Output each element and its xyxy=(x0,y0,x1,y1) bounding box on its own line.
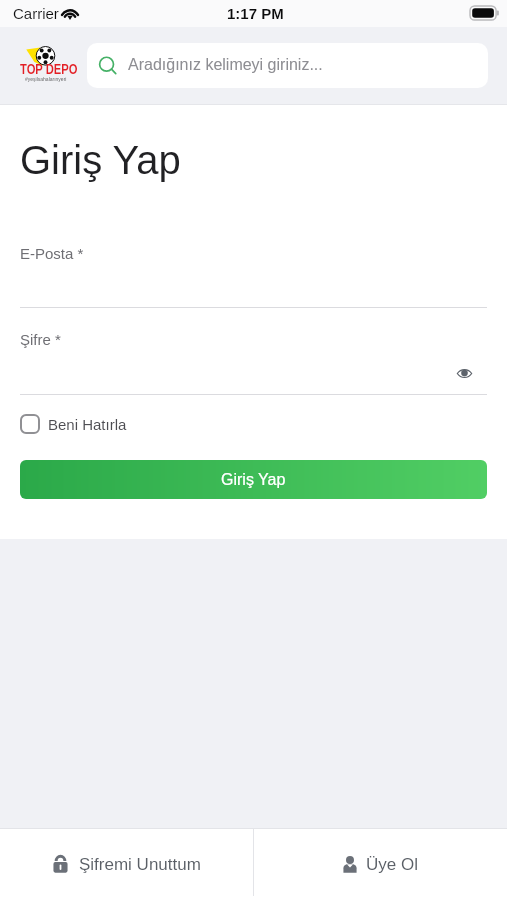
staticText: TOP DEPO xyxy=(20,61,78,78)
button[interactable]: Show password xyxy=(451,360,477,386)
staticText: Aradığınız kelimeyi giriniz... xyxy=(128,56,323,74)
staticText: 1:17 PM xyxy=(227,5,284,22)
staticText: Şifremi Unuttum xyxy=(79,855,201,874)
other: Search xyxy=(99,57,117,75)
staticText: Giriş Yap xyxy=(221,471,286,489)
staticText: E-Posta * xyxy=(20,245,84,262)
button[interactable]: Giriş Yap xyxy=(20,460,487,499)
button[interactable]: Şifremi Unuttum xyxy=(0,829,253,900)
staticText: Üye Ol xyxy=(366,855,418,874)
button[interactable]: Üye Ol xyxy=(254,829,507,900)
staticText: Giriş Yap xyxy=(20,138,181,183)
staticText: Şifre * xyxy=(20,331,61,348)
button[interactable]: Beni Hatırla xyxy=(20,414,127,434)
staticText: Beni Hatırla xyxy=(48,416,127,433)
button[interactable]: Search xyxy=(87,43,488,88)
staticText: #yeşilsahalarınyeri xyxy=(25,76,67,82)
staticText: Carrier xyxy=(13,5,59,22)
